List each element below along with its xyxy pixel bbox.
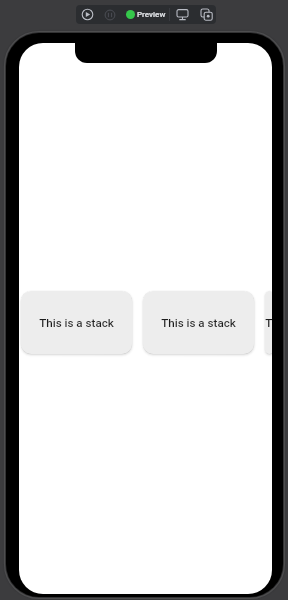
button[interactable]: Preview — [126, 5, 166, 24]
button[interactable]: This is a stack — [21, 291, 132, 354]
button[interactable]: Select device — [172, 5, 192, 24]
button[interactable]: Run preview — [77, 5, 97, 24]
staticText: Preview — [137, 10, 166, 19]
staticText: This is a stack — [265, 316, 272, 330]
staticText: This is a stack — [161, 316, 236, 330]
button[interactable]: Stop preview — [100, 5, 120, 24]
button[interactable]: This is a stack — [143, 291, 254, 354]
staticText: This is a stack — [39, 316, 114, 330]
button[interactable]: Copy preview — [196, 5, 216, 24]
button[interactable]: This is a stack — [265, 291, 272, 354]
